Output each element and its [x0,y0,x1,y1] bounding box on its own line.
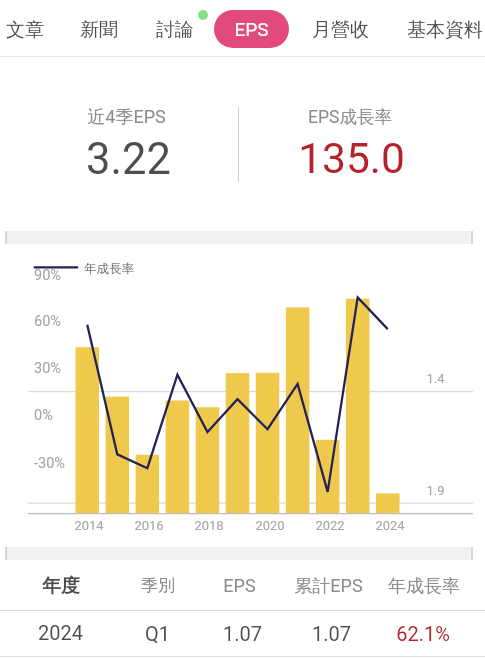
staticText: 近4季EPS [87,106,166,129]
button[interactable]: 年度 [1,574,121,598]
staticText: 1.9 [426,483,445,498]
staticText: 討論 [156,18,194,42]
staticText: EPS成長率 [308,106,392,128]
button[interactable]: 年成長率 [364,575,484,598]
staticText: 年成長率 [388,575,460,598]
button[interactable]: EPS [179,575,299,596]
button[interactable]: 新聞 [80,18,118,42]
staticText: EPS [234,18,269,40]
staticText: 年成長率 [84,261,134,277]
staticText: 2020 [255,518,285,533]
button[interactable]: Q1 [97,622,217,645]
staticText: 62.1% [396,622,450,645]
button[interactable]: 季別 [98,575,218,596]
staticText: 年度 [42,574,80,598]
staticText: 月營收 [312,18,369,42]
staticText: 2024 [38,621,83,644]
staticText: 1.07 [223,622,262,645]
button[interactable]: 文章 [6,18,44,42]
staticText: 135.0 [298,134,405,184]
staticText: 季別 [141,575,175,596]
staticText: 30% [34,360,61,377]
staticText: 基本資料 [407,18,483,42]
staticText: -30% [34,455,65,472]
staticText: 2014 [74,518,104,533]
staticText: 新聞 [80,18,118,42]
staticText: EPS [223,575,256,596]
button[interactable]: 月營收 [312,18,369,42]
button[interactable]: EPS [214,10,289,48]
staticText: 文章 [6,18,44,42]
staticText: 3.22 [86,134,171,185]
button[interactable]: 62.1% [363,622,483,645]
staticText: 2024 [375,518,405,533]
staticText: Q1 [145,622,170,645]
button[interactable]: 基本資料 [407,18,483,42]
staticText: 90% [34,267,61,284]
staticText: 2018 [194,518,224,533]
button[interactable]: 2024 [0,621,120,644]
button[interactable]: 累計EPS [268,575,388,598]
staticText: 1.07 [312,622,351,645]
staticText: 2022 [315,518,345,533]
button[interactable]: 1.07 [182,622,302,645]
button[interactable]: 1.07 [271,622,391,645]
staticText: 60% [34,313,61,330]
staticText: 0% [34,407,53,424]
staticText: 2016 [134,518,164,533]
staticText: 累計EPS [294,575,363,598]
staticText: 1.4 [426,371,445,386]
button[interactable]: 討論 [156,18,194,42]
